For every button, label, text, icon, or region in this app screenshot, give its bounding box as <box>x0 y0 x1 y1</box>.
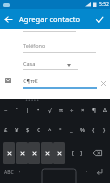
button[interactable]: √ <box>44 104 55 116</box>
button[interactable]: | <box>22 104 33 116</box>
staticText: ÷ <box>70 106 74 114</box>
staticText: ¢ <box>37 126 41 134</box>
button[interactable]: Emoji <box>3 142 15 164</box>
button[interactable]: Emoji <box>41 142 53 164</box>
button[interactable]: . <box>82 165 92 183</box>
staticText: Casa <box>23 60 36 67</box>
button[interactable]: ÷ <box>66 104 77 116</box>
staticText: ¢¶π€ <box>23 77 38 85</box>
staticText: ] <box>80 149 82 157</box>
staticText: $ <box>26 126 30 134</box>
staticText: [ <box>72 149 74 157</box>
button[interactable]: ¢ <box>33 124 44 136</box>
staticText: | <box>26 106 30 114</box>
staticText: ~ <box>4 106 8 114</box>
button[interactable]: Emoji <box>28 142 40 164</box>
staticText: _ <box>70 126 73 134</box>
staticText: % <box>80 126 85 134</box>
staticText: 5:52 <box>99 1 109 8</box>
staticText: × <box>81 106 85 114</box>
button[interactable]: ~ <box>0 104 11 116</box>
staticText: ` <box>16 106 18 114</box>
button[interactable]: Space <box>40 165 78 183</box>
button[interactable]: π <box>55 104 66 116</box>
staticText: Δ <box>103 106 107 114</box>
button[interactable]: ` <box>11 104 22 116</box>
staticText: , <box>19 167 21 174</box>
button[interactable]: ] <box>75 142 86 164</box>
staticText: ABC <box>4 169 14 176</box>
button[interactable]: % <box>77 124 88 136</box>
button[interactable]: Backspace <box>89 142 106 164</box>
button[interactable]: Back <box>0 9 17 29</box>
button[interactable]: ABC <box>0 165 22 183</box>
button[interactable]: £ <box>0 124 11 136</box>
button[interactable]: Clear <box>100 80 107 87</box>
button[interactable]: • <box>33 104 44 116</box>
button[interactable]: × <box>77 104 88 116</box>
staticText: ¶ <box>92 106 96 114</box>
button[interactable]: ° <box>55 124 66 136</box>
button[interactable]: ^ <box>44 124 55 136</box>
button[interactable]: ¶ <box>88 104 99 116</box>
staticText: ¥ <box>15 126 19 134</box>
button[interactable]: _ <box>66 124 77 136</box>
button[interactable]: Enter <box>92 165 106 183</box>
staticText: Agregar contacto <box>19 14 80 24</box>
button[interactable]: Emoji <box>16 142 28 164</box>
staticText: π <box>59 106 63 114</box>
staticText: } <box>103 126 106 134</box>
button[interactable]: ¥ <box>11 124 22 136</box>
staticText: √ <box>48 107 52 114</box>
button[interactable]: $ <box>22 124 33 136</box>
button[interactable]: Δ <box>99 104 110 116</box>
staticText: ° <box>59 126 62 134</box>
button[interactable]: { <box>88 124 99 136</box>
staticText: Teléfono <box>23 42 46 49</box>
staticText: • <box>37 106 40 114</box>
button[interactable]: Emoji <box>53 142 65 164</box>
staticText: . <box>86 167 88 174</box>
button[interactable]: , <box>14 165 25 183</box>
staticText: { <box>92 126 95 134</box>
button[interactable]: [ <box>67 142 78 164</box>
button[interactable]: } <box>99 124 110 136</box>
button[interactable]: Save <box>88 9 110 29</box>
staticText: ^ <box>48 126 52 134</box>
staticText: £ <box>4 126 8 134</box>
